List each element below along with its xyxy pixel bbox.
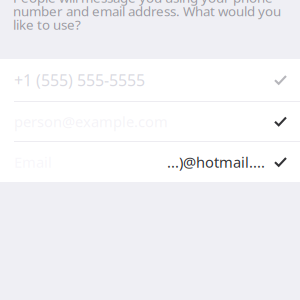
button[interactable]: Email [0,142,300,182]
button[interactable]: person@example.com [0,102,300,141]
staticText: person@example.com [14,112,168,131]
staticText: People will message you using your phone [13,0,273,6]
staticText: +1 (555) 555-5555 [14,69,145,91]
button[interactable]: +1 (555) 555-5555 [0,59,300,101]
staticText: like to use? [13,16,81,33]
staticText: ...)@hotmail.... [167,152,265,172]
staticText: number and email address. What would you [13,2,281,20]
